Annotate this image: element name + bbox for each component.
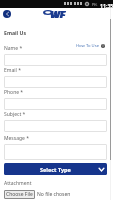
staticText: Choose File	[6, 191, 33, 198]
staticText: Email Us	[4, 29, 27, 36]
staticText: Message *	[4, 135, 29, 142]
staticText: Name *	[4, 45, 23, 52]
staticText: WF	[50, 8, 66, 18]
button[interactable]: Choose File	[6, 190, 33, 199]
button[interactable]	[4, 98, 107, 110]
staticText: How To Use	[76, 43, 100, 49]
button[interactable]: Select Type	[4, 163, 107, 175]
button[interactable]: How To Use	[76, 43, 105, 49]
staticText: Subject *	[4, 111, 26, 118]
button[interactable]: Back	[3, 10, 11, 18]
staticText: No file chosen	[37, 191, 71, 198]
staticText: PH.	[92, 2, 98, 7]
button[interactable]	[4, 120, 107, 132]
button[interactable]	[4, 144, 107, 160]
staticText: WF	[51, 8, 67, 18]
button[interactable]	[4, 54, 107, 66]
staticText: Email *	[4, 67, 21, 74]
staticText: Phone *	[4, 89, 24, 96]
staticText: Select Type	[40, 166, 71, 173]
button[interactable]	[4, 76, 107, 88]
button[interactable]: Logo	[43, 8, 71, 18]
staticText: Attachment	[4, 180, 32, 187]
staticText: 11:35	[100, 2, 113, 9]
